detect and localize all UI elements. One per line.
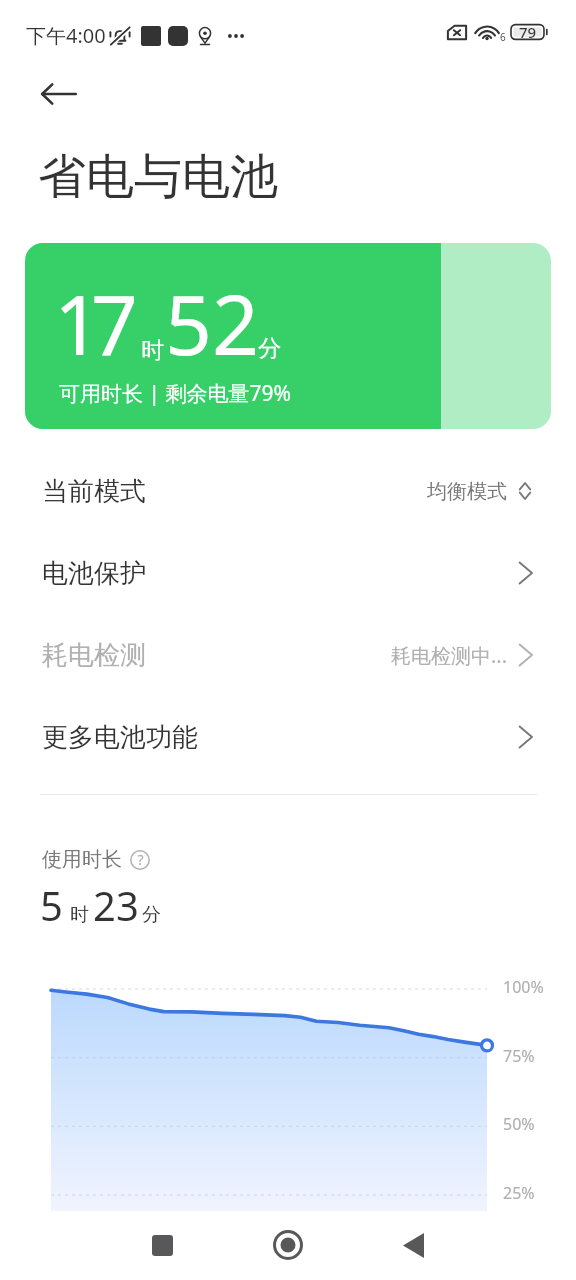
button[interactable]: 1	[25, 243, 551, 429]
staticText: 1	[54, 267, 101, 379]
staticText: 可用时长 | 剩余电量79%	[59, 379, 291, 408]
staticText: 5	[40, 878, 63, 932]
staticText: 79	[519, 22, 537, 42]
staticText: 25%	[503, 1182, 535, 1204]
staticText: ?	[137, 850, 144, 869]
staticText: 使用时长	[42, 847, 122, 872]
button[interactable]: Recents	[138, 1221, 186, 1269]
staticText: 当前模式	[42, 475, 146, 508]
staticText: 时	[70, 903, 89, 927]
button[interactable]: 当前模式	[0, 450, 576, 532]
button[interactable]: 耗电检测	[0, 614, 576, 696]
staticText: 时	[141, 336, 164, 365]
button[interactable]: Back	[389, 1221, 437, 1269]
staticText: 均衡模式	[427, 479, 507, 504]
button[interactable]: Back	[34, 70, 82, 118]
staticText: 省电与电池	[38, 147, 278, 207]
staticText: 7	[91, 267, 138, 379]
button[interactable]: Home	[264, 1221, 312, 1269]
staticText: 耗电检测	[42, 639, 146, 672]
staticText: 100%	[503, 976, 544, 998]
staticText: 电池保护	[42, 557, 146, 590]
button[interactable]: 更多电池功能	[0, 696, 576, 778]
staticText: 6	[500, 30, 506, 44]
staticText: 分	[258, 334, 281, 363]
staticText: 耗电检测中...	[391, 642, 508, 669]
staticText: 分	[142, 903, 161, 927]
staticText: 下午4:00	[26, 22, 106, 49]
button[interactable]: 电池保护	[0, 532, 576, 614]
staticText: 23	[93, 878, 139, 932]
staticText: 75%	[503, 1045, 535, 1067]
staticText: 52	[165, 267, 259, 379]
staticText: 50%	[503, 1113, 535, 1135]
button[interactable]: Help	[130, 850, 150, 870]
staticText: 更多电池功能	[42, 721, 198, 754]
